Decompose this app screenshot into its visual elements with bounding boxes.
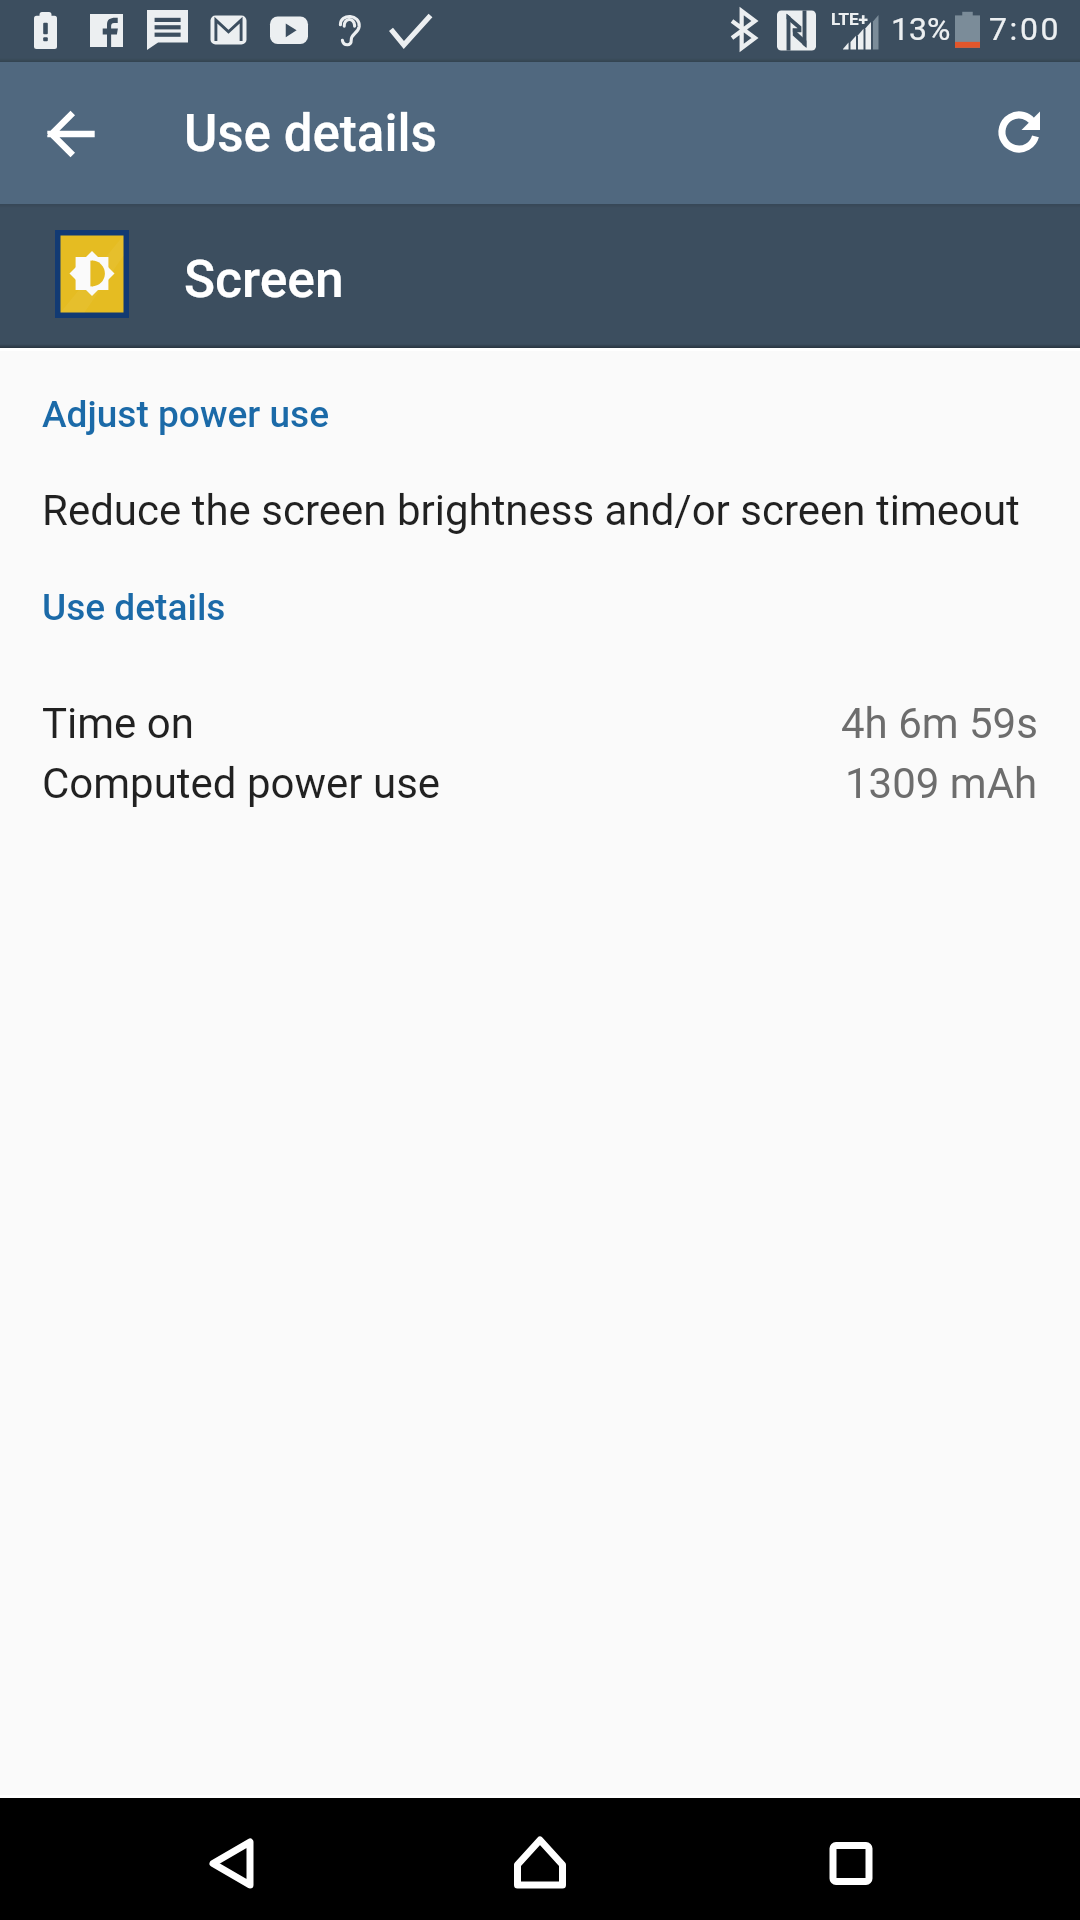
staticText: 13% xyxy=(891,10,951,48)
staticText: Screen xyxy=(184,249,344,309)
button[interactable]: Use details xyxy=(0,576,1080,632)
button[interactable]: Navigate up xyxy=(22,84,120,182)
staticText: 4h 6m 59s xyxy=(841,699,1038,748)
staticText: Use details xyxy=(184,104,437,164)
staticText: Time on xyxy=(42,699,194,748)
staticText: 1309 mAh xyxy=(845,759,1038,808)
staticText: Computed power use xyxy=(42,759,441,808)
staticText: Reduce the screen brightness and/or scre… xyxy=(42,486,1020,535)
staticText: Adjust power use xyxy=(42,393,330,436)
button[interactable]: Refresh xyxy=(970,83,1068,181)
staticText: 7:00 xyxy=(989,10,1062,48)
button[interactable]: Adjust power use xyxy=(0,382,1080,552)
button[interactable]: Time on xyxy=(0,699,1080,751)
button[interactable]: Computed power use xyxy=(0,759,1080,811)
button[interactable]: Recent apps xyxy=(791,1798,911,1920)
button[interactable]: Home xyxy=(480,1798,600,1920)
staticText: LTE+ xyxy=(831,9,868,29)
staticText: Use details xyxy=(42,586,226,629)
button[interactable]: Back xyxy=(171,1798,291,1920)
